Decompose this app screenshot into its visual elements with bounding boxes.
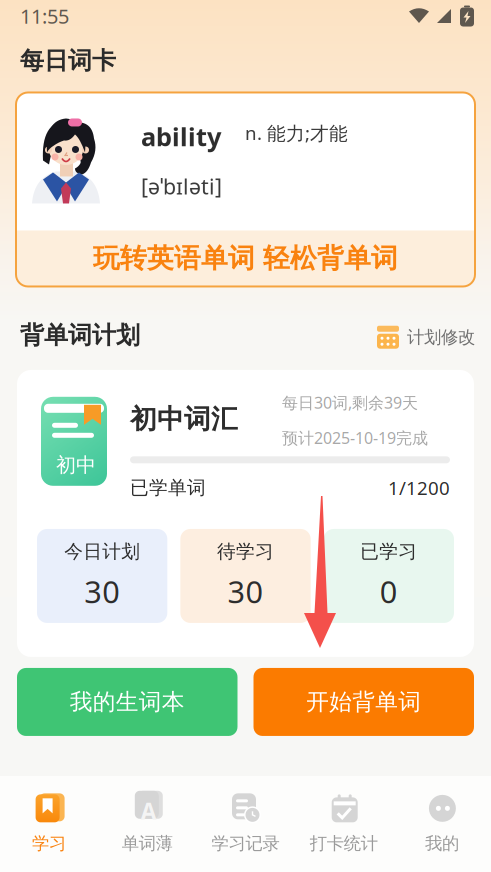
button[interactable]: 学习记录 bbox=[196, 783, 295, 865]
staticText: 我的生词本 bbox=[70, 688, 185, 716]
staticText: [əˈbɪləti] bbox=[141, 172, 222, 200]
button[interactable]: A bbox=[98, 783, 196, 865]
staticText: 已学单词 bbox=[130, 476, 206, 499]
staticText: 背单词计划 bbox=[20, 320, 140, 350]
staticText: 开始背单词 bbox=[306, 688, 421, 716]
staticText: ability bbox=[141, 119, 221, 153]
staticText: 初中词汇 bbox=[130, 403, 238, 436]
staticText: 30 bbox=[227, 571, 263, 612]
staticText: 计划修改 bbox=[407, 327, 475, 348]
staticText: 今日计划 bbox=[64, 540, 140, 563]
staticText: 已学习 bbox=[360, 540, 417, 563]
staticText: 每日30词,剩余39天 bbox=[282, 392, 418, 413]
staticText: 1/1200 bbox=[388, 475, 450, 500]
staticText: 学习 bbox=[32, 833, 66, 854]
staticText: 学习记录 bbox=[211, 833, 279, 854]
staticText: 我的 bbox=[425, 833, 459, 854]
staticText: 玩转英语单词 轻松背单词 bbox=[93, 242, 398, 275]
button[interactable]: 学习 bbox=[0, 783, 98, 865]
staticText: 待学习 bbox=[217, 540, 274, 563]
staticText: n. 能力;才能 bbox=[245, 120, 348, 145]
button[interactable]: 打卡统计 bbox=[295, 783, 393, 865]
button[interactable]: 我的生词本 bbox=[17, 668, 237, 736]
staticText: 每日词卡 bbox=[20, 46, 116, 75]
staticText: 打卡统计 bbox=[310, 833, 378, 854]
staticText: 0 bbox=[380, 571, 398, 612]
button[interactable]: 计划修改 bbox=[377, 322, 475, 349]
staticText: 11:55 bbox=[20, 3, 69, 29]
staticText: 单词薄 bbox=[122, 833, 173, 854]
staticText: A bbox=[141, 796, 157, 826]
button[interactable]: 我的 bbox=[393, 783, 491, 865]
staticText: 预计2025-10-19完成 bbox=[282, 427, 428, 448]
button[interactable]: 开始背单词 bbox=[253, 668, 474, 736]
staticText: 初中 bbox=[56, 453, 96, 477]
staticText: 30 bbox=[84, 571, 120, 612]
